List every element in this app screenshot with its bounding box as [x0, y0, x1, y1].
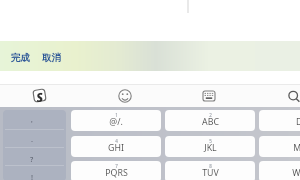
staticText: GHI [108, 142, 124, 154]
button[interactable]: 6 [259, 136, 300, 157]
staticText: 2 [209, 112, 212, 118]
staticText: MNO [293, 142, 300, 154]
button[interactable]: Search [279, 85, 300, 107]
staticText: 取消 [42, 52, 61, 64]
button[interactable]: 2 [165, 110, 255, 131]
staticText: ? [30, 154, 34, 164]
staticText: 4 [115, 138, 118, 144]
staticText: 8 [209, 163, 212, 169]
button[interactable]: 3 [259, 110, 300, 131]
button[interactable]: 8 [165, 161, 255, 180]
staticText: ' [31, 118, 33, 128]
staticText: TUV [202, 167, 219, 179]
button[interactable]: 5 [165, 136, 255, 157]
button[interactable]: 取消 [42, 51, 61, 65]
staticText: 7 [115, 163, 118, 169]
staticText: S [35, 88, 44, 102]
button[interactable]: Input method menu [25, 84, 53, 106]
button[interactable]: 4 [71, 136, 161, 157]
button[interactable]: 7 [71, 161, 161, 180]
button[interactable]: Emoji [111, 85, 139, 107]
button[interactable]: ' [4, 114, 60, 132]
staticText: ! [31, 172, 34, 180]
staticText: ABC [202, 116, 219, 128]
button[interactable]: Switch keyboard [195, 85, 223, 107]
staticText: 1 [115, 112, 118, 118]
button[interactable]: 完成 [11, 51, 30, 65]
button[interactable]: · [4, 132, 60, 150]
button[interactable]: ? [4, 150, 60, 168]
staticText: @/. [109, 116, 123, 128]
button[interactable]: 1 [71, 110, 161, 131]
staticText: 5 [209, 138, 212, 144]
staticText: JKL [204, 142, 217, 154]
staticText: PQRS [105, 167, 128, 179]
staticText: WXYZ [292, 167, 300, 179]
button[interactable]: 9 [259, 161, 300, 180]
button[interactable]: ! [4, 168, 60, 180]
staticText: DEF [296, 116, 300, 128]
staticText: · [31, 136, 34, 146]
staticText: 完成 [11, 52, 30, 64]
